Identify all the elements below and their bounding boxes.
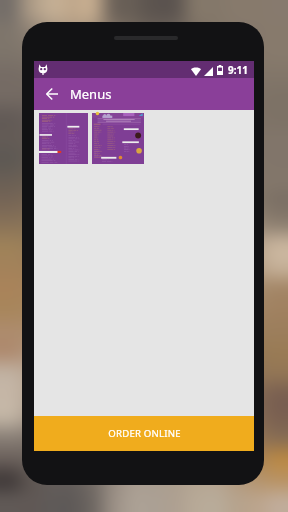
button[interactable]: Menu page 1 — [39, 113, 88, 164]
button[interactable]: Back — [34, 78, 68, 110]
staticText: ORDER ONLINE — [108, 427, 181, 440]
button[interactable]: ORDER ONLINE — [34, 416, 254, 451]
button[interactable]: Menu page 2 — [92, 113, 144, 164]
staticText: Menus — [70, 85, 112, 103]
staticText: 9:11 — [228, 63, 248, 77]
